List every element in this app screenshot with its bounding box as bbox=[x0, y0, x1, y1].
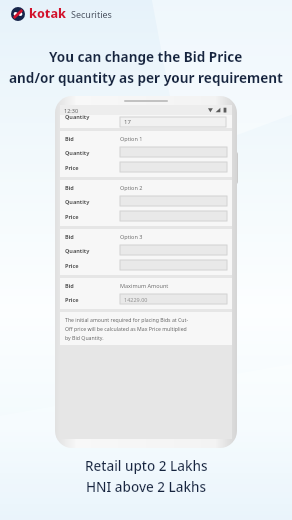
staticText: Option 2 bbox=[120, 184, 143, 191]
staticText: Price bbox=[65, 213, 79, 220]
button[interactable] bbox=[120, 147, 227, 157]
staticText: Bid bbox=[65, 282, 74, 289]
staticText: kotak bbox=[29, 5, 67, 22]
button[interactable]: Bid bbox=[60, 278, 232, 309]
staticText: Price bbox=[65, 296, 79, 303]
staticText: You can change the Bid Price bbox=[49, 48, 243, 66]
other: Kotak logo bbox=[11, 7, 25, 21]
staticText: Quantity bbox=[65, 198, 90, 205]
staticText: Option 3 bbox=[120, 233, 143, 240]
button[interactable] bbox=[120, 211, 227, 221]
staticText: Quantity bbox=[65, 113, 90, 120]
staticText: The initial amount required for placing … bbox=[65, 316, 189, 323]
button[interactable] bbox=[120, 196, 227, 206]
button[interactable] bbox=[120, 162, 227, 172]
staticText: Option 1 bbox=[120, 135, 143, 142]
staticText: Bid bbox=[65, 135, 74, 142]
staticText: 14229.00 bbox=[124, 296, 148, 303]
staticText: Off price will be calculated as Max Pric… bbox=[65, 325, 187, 332]
staticText: and/or quantity as per your requirement bbox=[9, 69, 283, 87]
staticText: Price bbox=[65, 164, 79, 171]
staticText: 17 bbox=[124, 118, 131, 126]
button[interactable]: Kotak logo bbox=[11, 5, 292, 22]
button[interactable]: Bid bbox=[60, 131, 232, 177]
staticText: Quantity bbox=[65, 149, 90, 156]
staticText: HNI above 2 Lakhs bbox=[86, 478, 207, 496]
staticText: Retail upto 2 Lakhs bbox=[85, 457, 208, 475]
staticText: Bid bbox=[65, 233, 74, 240]
button[interactable]: Bid bbox=[60, 229, 232, 275]
button[interactable]: Bid bbox=[60, 180, 232, 226]
staticText: by Bid Quantity. bbox=[65, 334, 104, 341]
staticText: Quantity bbox=[65, 247, 90, 254]
staticText: Maximum Amount bbox=[120, 282, 169, 289]
staticText: Securities bbox=[71, 8, 112, 20]
staticText: Bid bbox=[65, 184, 74, 191]
staticText: 12:30 bbox=[64, 107, 79, 114]
button[interactable]: 14229.00 bbox=[120, 294, 227, 304]
staticText: Price bbox=[65, 262, 79, 269]
button[interactable] bbox=[120, 245, 227, 255]
button[interactable] bbox=[120, 260, 227, 270]
